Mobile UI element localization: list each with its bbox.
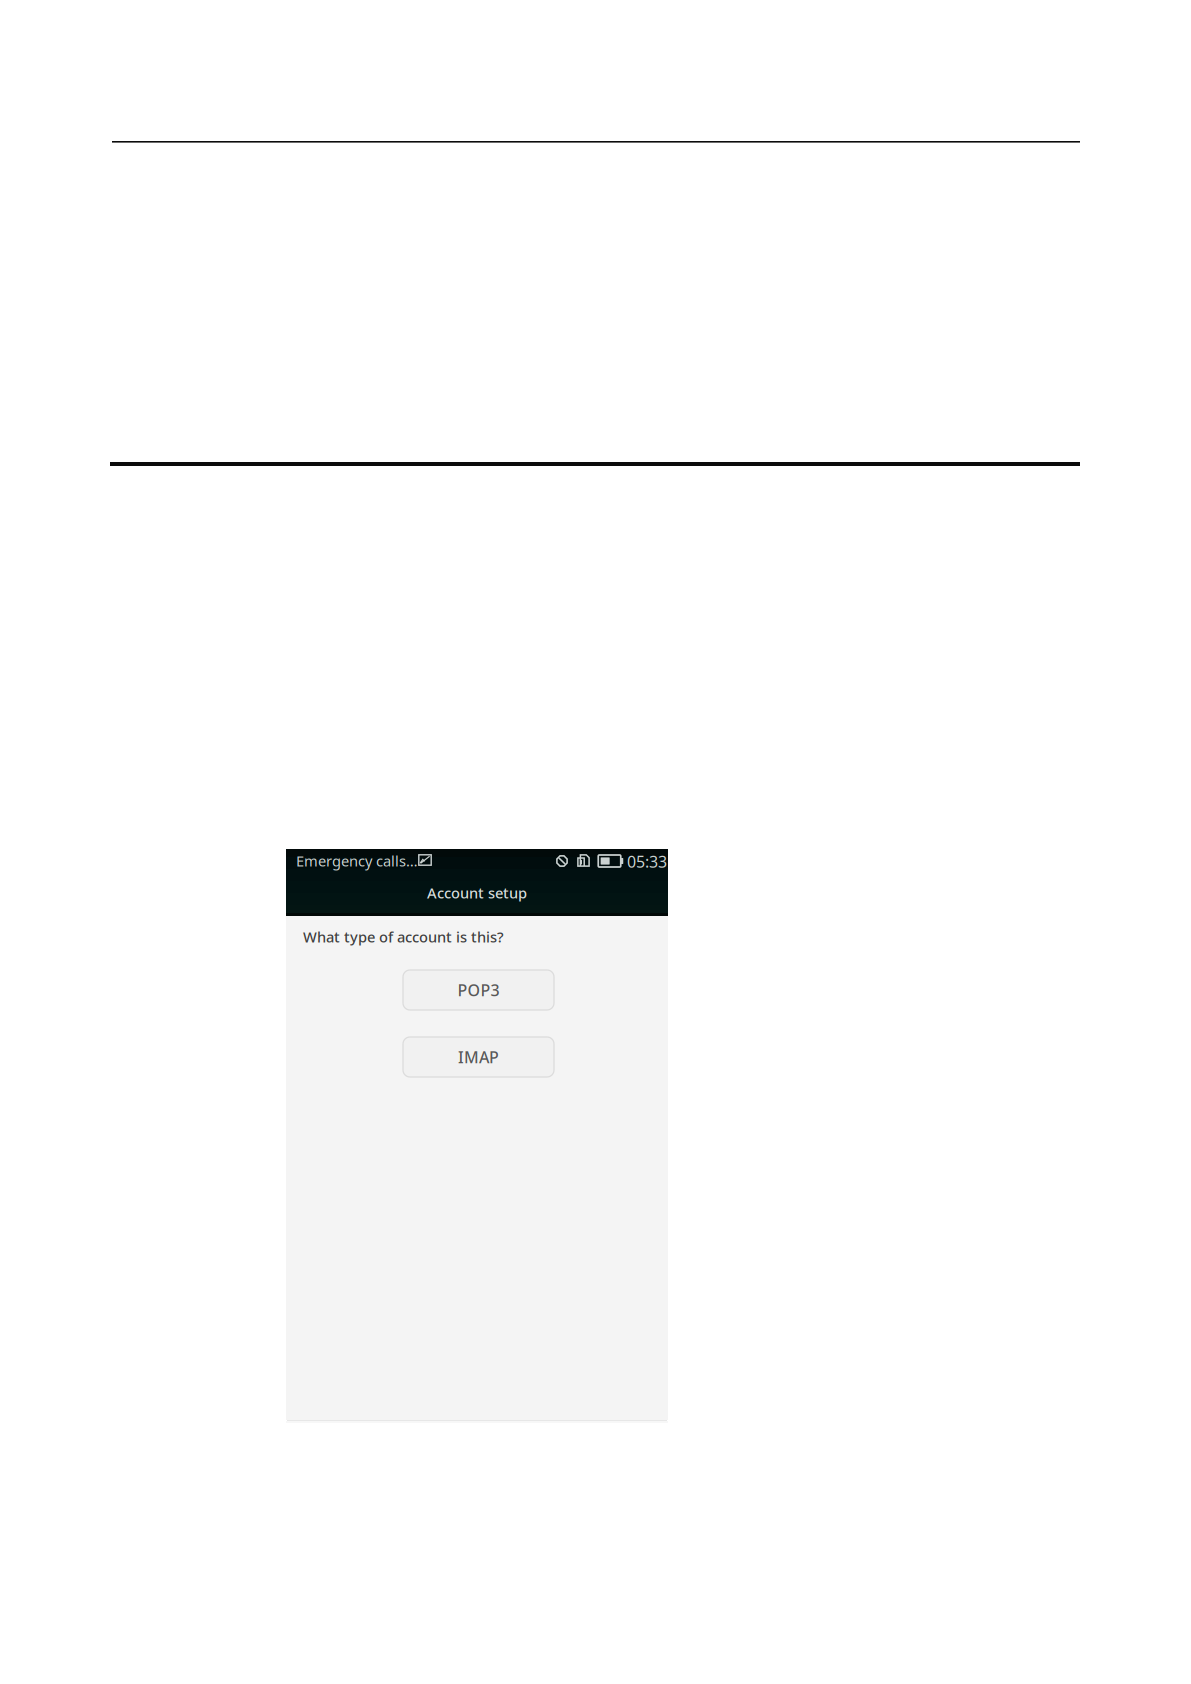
staticText: Account setup: [427, 883, 527, 902]
staticText: What type of account is this?: [303, 927, 504, 946]
staticText: 05:33: [627, 851, 667, 872]
button[interactable]: POP3: [403, 970, 554, 1010]
staticText: Emergency calls…: [296, 851, 418, 870]
staticText: POP3: [457, 979, 499, 1001]
button[interactable]: IMAP: [403, 1037, 554, 1077]
staticText: IMAP: [458, 1046, 499, 1068]
